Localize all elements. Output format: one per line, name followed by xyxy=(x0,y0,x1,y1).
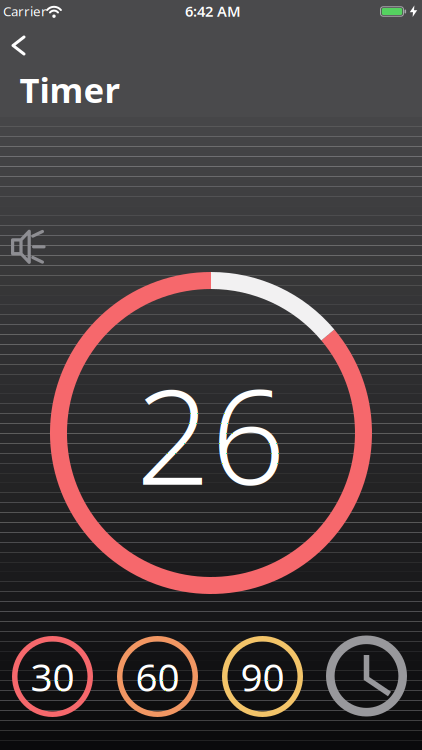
staticText: 60 xyxy=(135,651,179,702)
staticText: Timer xyxy=(19,66,119,112)
button[interactable]: Back xyxy=(5,29,32,62)
staticText: 30 xyxy=(30,651,74,702)
staticText: Carrier xyxy=(3,2,47,20)
staticText: 6:42 AM xyxy=(185,1,241,21)
button[interactable]: 30 xyxy=(12,636,93,717)
staticText: 90 xyxy=(240,651,284,702)
button[interactable]: Mute xyxy=(11,229,45,265)
button[interactable]: 90 xyxy=(222,636,303,717)
button[interactable]: Custom timer xyxy=(326,635,407,716)
staticText: 26 xyxy=(136,347,286,521)
button[interactable]: 60 xyxy=(117,636,198,717)
